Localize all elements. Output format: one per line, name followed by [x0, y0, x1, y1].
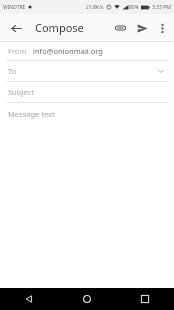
- staticText: info@onionmail.org: [33, 46, 103, 56]
- staticText: From: [8, 46, 27, 56]
- staticText: 80%: [129, 4, 139, 11]
- button[interactable]: Recent apps: [116, 288, 174, 310]
- button[interactable]: Subject: [0, 82, 174, 102]
- button[interactable]: Message text: [0, 103, 174, 288]
- button[interactable]: More options: [153, 19, 171, 37]
- button[interactable]: Back: [0, 288, 58, 310]
- staticText: WINDTRE: [3, 4, 26, 11]
- button[interactable]: Send: [131, 17, 153, 39]
- button[interactable]: Back: [5, 17, 27, 39]
- button[interactable]: Home: [58, 288, 116, 310]
- staticText: Message text: [8, 109, 55, 119]
- staticText: 3:33 PM: [152, 4, 171, 11]
- staticText: Compose: [35, 20, 84, 35]
- button[interactable]: To: [0, 61, 174, 81]
- staticText: 21.8K/s: [86, 4, 104, 11]
- button[interactable]: Show Cc and Bcc: [156, 66, 166, 76]
- button[interactable]: Attach file: [109, 17, 131, 39]
- staticText: To: [8, 66, 17, 76]
- button[interactable]: From: [0, 42, 174, 60]
- staticText: Subject: [8, 87, 34, 97]
